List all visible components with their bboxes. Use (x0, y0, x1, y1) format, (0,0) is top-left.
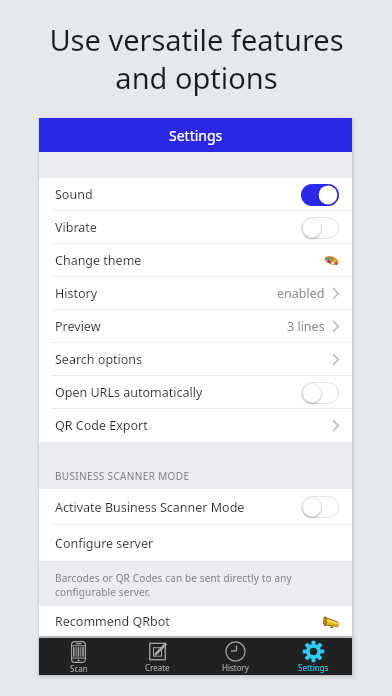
button[interactable]: Sound (39, 178, 352, 211)
staticText: Open URLs automatically (55, 384, 203, 401)
button[interactable]: Change theme (39, 244, 352, 277)
staticText: Preview (55, 318, 101, 335)
staticText: Activate Business Scanner Mode (55, 499, 245, 516)
staticText: Scan (70, 663, 88, 674)
staticText: Sound (55, 186, 93, 203)
staticText: Change theme (55, 252, 142, 269)
staticText: Use versatile features and options (49, 20, 344, 97)
staticText: Barcodes or QR Codes can be sent directl… (55, 571, 292, 599)
staticText: Settings (298, 662, 329, 673)
button[interactable]: Activate Business Scanner Mode (39, 489, 352, 525)
button[interactable]: History (196, 641, 274, 675)
button[interactable]: Recommend QRbot (39, 606, 352, 636)
staticText: History (222, 662, 249, 673)
button[interactable]: Vibrate (39, 211, 352, 244)
staticText: QR Code Export (55, 417, 148, 434)
button[interactable]: Open URLs automatically (39, 376, 352, 409)
other: Recommend (323, 615, 339, 628)
button[interactable]: Off (301, 496, 339, 518)
button[interactable]: Scan (39, 641, 118, 675)
staticText: Search options (55, 351, 143, 368)
staticText: BUSINESS SCANNER MODE (55, 469, 190, 483)
button[interactable]: Create (118, 641, 196, 675)
button[interactable]: Settings (274, 641, 352, 675)
button[interactable]: Preview (39, 310, 352, 343)
button[interactable]: On (301, 184, 339, 206)
button[interactable]: History (39, 277, 352, 310)
staticText: History (55, 285, 98, 302)
staticText: 3 lines (287, 318, 325, 335)
button[interactable]: QR Code Export (39, 409, 352, 442)
staticText: Configure server (55, 535, 154, 552)
staticText: Recommend QRbot (55, 613, 170, 630)
other: Theme (324, 254, 339, 267)
button[interactable]: Search options (39, 343, 352, 376)
staticText: Vibrate (55, 219, 97, 236)
staticText: Create (145, 662, 170, 673)
button[interactable]: Configure server (39, 525, 352, 561)
staticText: Settings (169, 126, 223, 145)
staticText: enabled (277, 285, 325, 302)
button[interactable]: Off (301, 382, 339, 404)
button[interactable]: Off (301, 217, 339, 239)
